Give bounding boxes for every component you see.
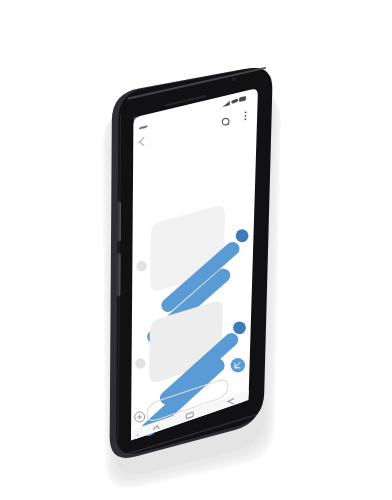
button[interactable]: Messaging app on phone [0, 0, 392, 500]
